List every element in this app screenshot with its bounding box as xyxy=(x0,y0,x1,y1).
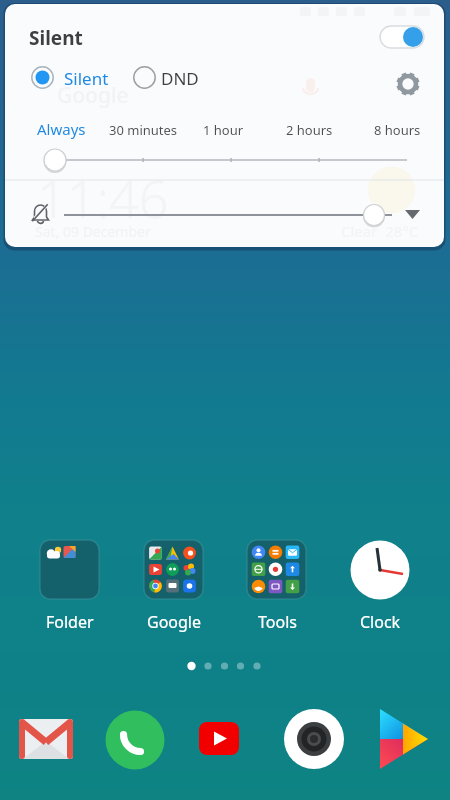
staticText: Always xyxy=(37,119,86,139)
staticText: Google xyxy=(147,611,202,633)
staticText: Sat, 09 December xyxy=(35,222,151,241)
staticText: 1 hour xyxy=(203,121,244,139)
staticText: 11:46 xyxy=(37,162,169,233)
staticText: Google xyxy=(57,81,129,110)
staticText: 2 hours xyxy=(286,121,333,139)
staticText: Silent xyxy=(64,67,109,90)
staticText: Tools xyxy=(258,611,297,633)
staticText: Silent xyxy=(29,25,83,51)
staticText: Clear 28°C xyxy=(341,221,419,241)
staticText: Clock xyxy=(360,611,401,633)
staticText: Folder xyxy=(46,611,94,633)
staticText: DND xyxy=(161,67,199,90)
staticText: 8 hours xyxy=(374,121,421,139)
staticText: 30 minutes xyxy=(109,121,178,139)
